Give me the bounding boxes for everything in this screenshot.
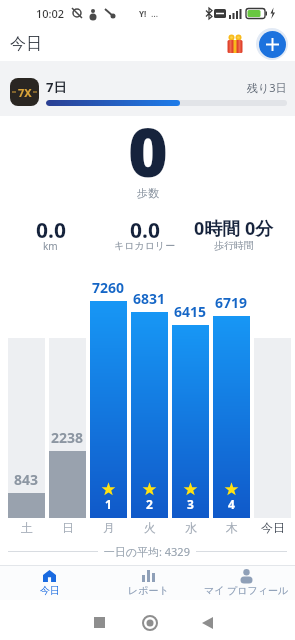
staticText: 今日 [261, 520, 285, 535]
staticText: 4 [228, 496, 235, 512]
staticText: 7260 [92, 278, 125, 297]
staticText: 歩行時間 [214, 239, 254, 252]
button[interactable] [256, 28, 288, 60]
staticText: 歩数 [137, 186, 159, 200]
staticText: 水 [185, 520, 197, 535]
staticText: 土 [21, 520, 33, 535]
staticText: 2 [146, 496, 153, 512]
staticText: 3 [187, 496, 194, 512]
staticText: 火 [144, 520, 156, 535]
staticText: 残り3日 [247, 80, 287, 95]
staticText: 6415 [174, 302, 207, 321]
staticText: 2238 [51, 428, 84, 447]
button[interactable] [142, 615, 158, 631]
staticText: 0 [128, 104, 168, 172]
button[interactable] [227, 34, 243, 53]
staticText: 今日 [10, 34, 42, 54]
staticText: 10:02 [36, 6, 65, 21]
staticText: キロカロリー [114, 239, 176, 252]
staticText: … [151, 7, 159, 19]
button[interactable] [202, 617, 213, 629]
staticText: マイ プロフィール [204, 583, 289, 597]
button[interactable]: 7X [10, 67, 287, 116]
staticText: 木 [226, 520, 238, 535]
staticText: 1 [105, 496, 112, 512]
button[interactable]: 今日 [0, 566, 99, 600]
staticText: 日 [62, 520, 74, 535]
button[interactable]: マイ プロフィール [197, 566, 295, 600]
staticText: 843 [14, 470, 39, 489]
staticText: 0時間 0分 [194, 216, 274, 237]
staticText: 0.0 [36, 216, 66, 237]
staticText: 6719 [215, 293, 248, 312]
staticText: レポート [128, 584, 169, 597]
staticText: km [43, 239, 58, 253]
staticText: 7X [18, 85, 32, 100]
button[interactable]: レポート [99, 566, 197, 600]
staticText: 7日 [46, 78, 67, 96]
staticText: 今日 [40, 584, 60, 597]
staticText: Y! [139, 8, 147, 19]
staticText: 月 [103, 520, 115, 535]
staticText: 0.0 [130, 216, 160, 237]
staticText: 一日の平均: 4329 [98, 544, 196, 559]
staticText: 6831 [133, 289, 166, 308]
